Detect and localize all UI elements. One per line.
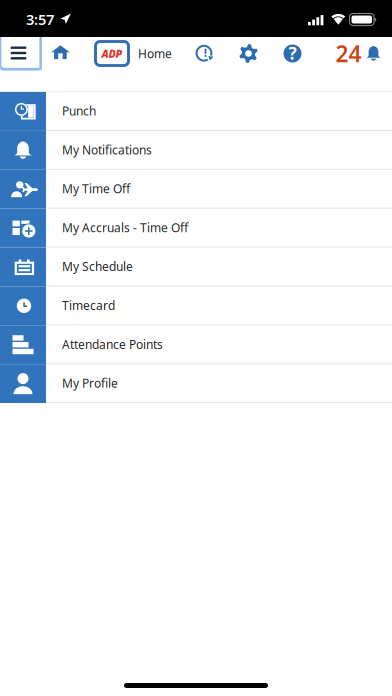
staticText: Attendance Points (62, 336, 163, 352)
staticText: ADP (101, 46, 122, 61)
button[interactable]: ADP (95, 41, 128, 65)
staticText: ? (288, 41, 296, 64)
staticText: My Accruals - Time Off (62, 220, 188, 235)
staticText: My Profile (62, 375, 118, 391)
button[interactable]: Notifications (335, 38, 381, 68)
button[interactable]: Menu (0, 37, 42, 71)
button[interactable]: Settings (234, 38, 262, 68)
button[interactable]: Pending requests (189, 38, 219, 68)
staticText: Timecard (62, 297, 115, 313)
button[interactable]: Punch (0, 92, 392, 131)
button[interactable]: My Notifications (0, 131, 392, 170)
staticText: My Notifications (62, 142, 152, 158)
staticText: 3:57 (26, 9, 54, 29)
button[interactable]: My Profile (0, 364, 392, 403)
button[interactable]: Help (278, 38, 306, 68)
button[interactable]: My Time Off (0, 170, 392, 209)
button[interactable]: Home (47, 37, 73, 67)
staticText: 24 (335, 38, 361, 68)
button[interactable]: My Accruals - Time Off (0, 209, 392, 247)
button[interactable]: My Schedule (0, 247, 392, 286)
staticText: Punch (62, 103, 96, 119)
button[interactable]: Attendance Points (0, 325, 392, 364)
staticText: My Schedule (62, 258, 133, 274)
staticText: Home (138, 45, 172, 61)
button[interactable]: Timecard (0, 286, 392, 325)
staticText: My Time Off (62, 181, 130, 197)
